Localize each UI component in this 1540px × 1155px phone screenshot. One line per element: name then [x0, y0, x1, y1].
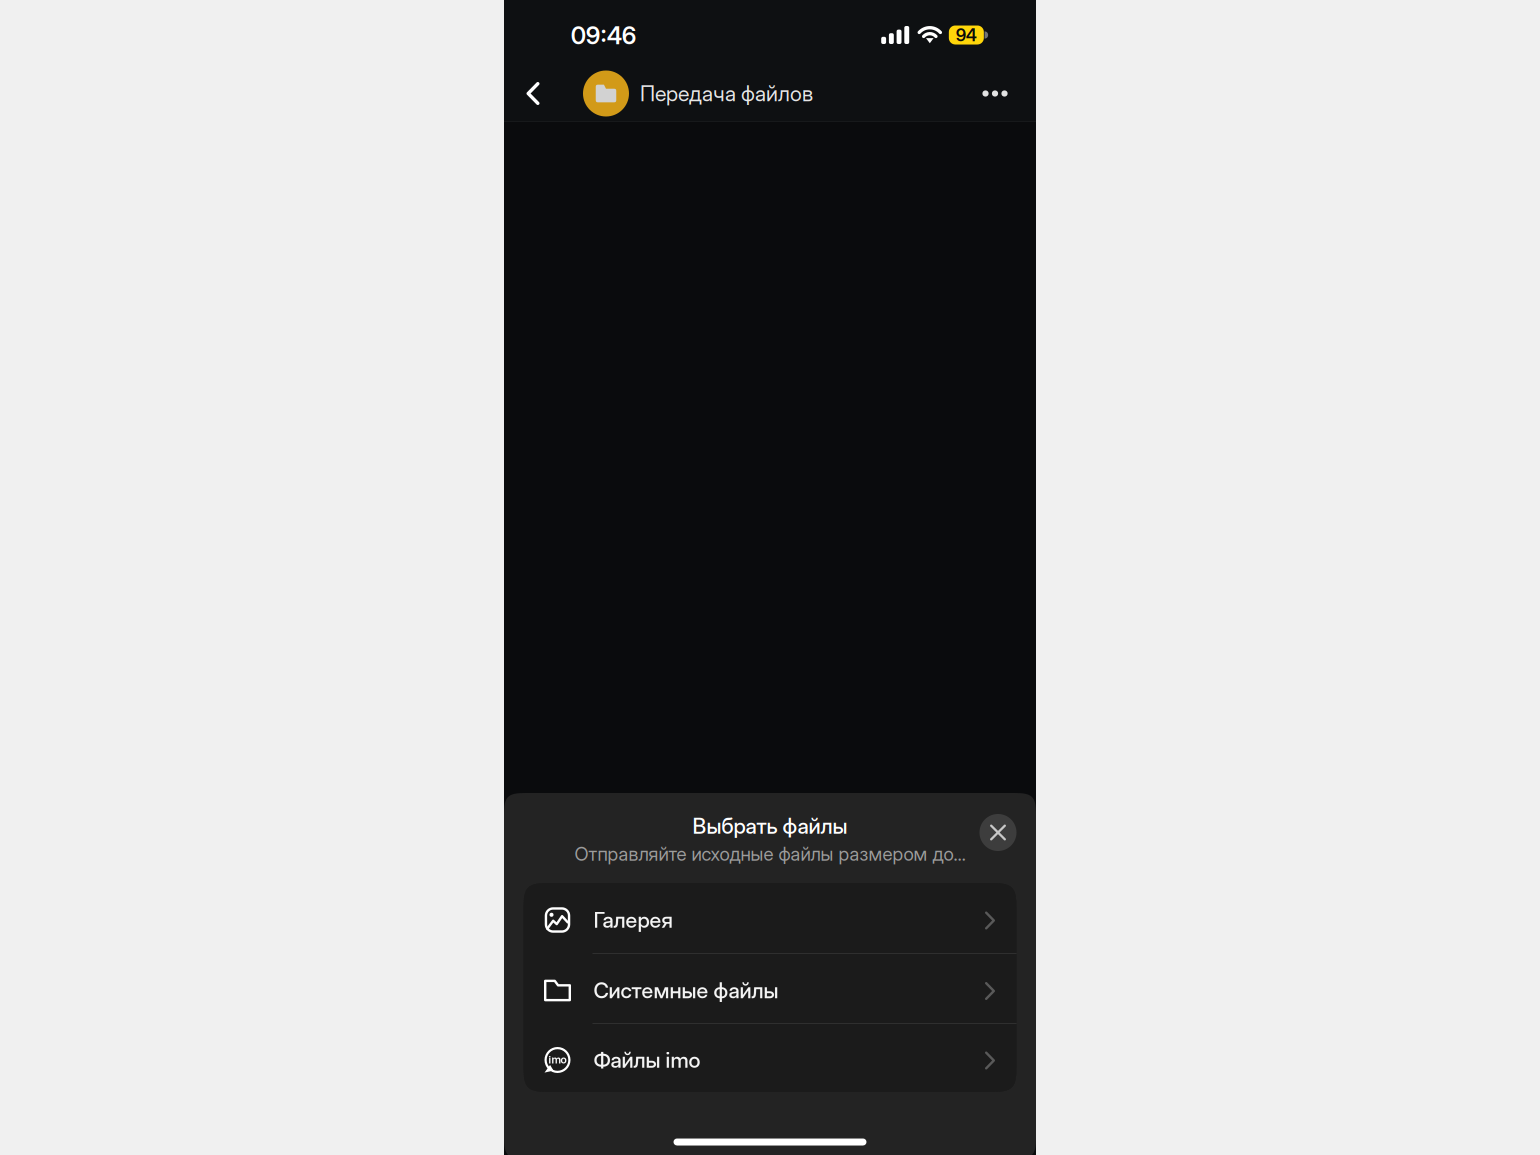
button[interactable]: imo — [523, 1024, 1016, 1092]
staticText: Галерея — [593, 907, 672, 933]
button[interactable]: Close — [979, 814, 1016, 851]
button[interactable]: Галерея — [523, 883, 1016, 953]
staticText: Файлы imo — [593, 1047, 700, 1073]
staticText: 94 — [956, 25, 977, 45]
button[interactable]: More options — [969, 69, 1021, 117]
staticText: Системные файлы — [593, 978, 778, 1003]
button[interactable]: Системные файлы — [523, 954, 1016, 1023]
staticText: Выбрать файлы — [692, 813, 847, 839]
staticText: imo — [548, 1053, 566, 1066]
staticText: Отправляйте исходные файлы размером до… — [574, 843, 965, 865]
staticText: 09:46 — [571, 21, 637, 50]
button[interactable]: Back — [511, 69, 555, 117]
staticText: Передача файлов — [640, 81, 813, 106]
button[interactable]: Передача файлов — [583, 69, 895, 117]
